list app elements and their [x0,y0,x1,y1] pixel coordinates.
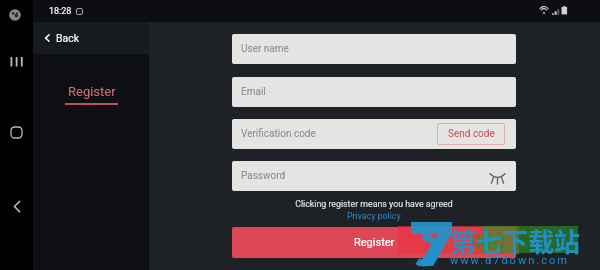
button[interactable]: Back [8,198,25,215]
button[interactable]: User name [232,34,516,64]
button[interactable]: Send code [437,123,505,145]
staticText: 18:28 [49,6,72,17]
staticText: Back [56,32,80,44]
button[interactable]: Email [232,77,516,107]
staticText: Email [241,86,266,98]
button[interactable]: Password [232,161,516,191]
button[interactable]: Register [232,227,516,258]
staticText: Verification code [241,128,316,140]
staticText: 第七下载站 [450,222,581,260]
staticText: Privacy policy [347,211,401,221]
button[interactable]: Recent apps [8,53,25,70]
staticText: Register [68,84,116,99]
staticText: Register [354,236,395,249]
staticText: Clicking register means you have agreed [295,199,453,209]
button[interactable]: Verification code [232,119,516,149]
button[interactable]: Toggle password visibility [486,165,508,187]
staticText: www.d7down.com [450,254,569,267]
staticText: Send code [448,128,495,140]
button[interactable]: Privacy policy [347,211,401,221]
staticText: User name [241,43,289,55]
button[interactable]: Back [33,22,149,54]
other: Assistant [7,7,23,23]
staticText: IMC [470,231,505,253]
button[interactable]: Home [8,124,25,141]
button[interactable]: Register [65,84,118,105]
staticText: Password [241,170,286,182]
